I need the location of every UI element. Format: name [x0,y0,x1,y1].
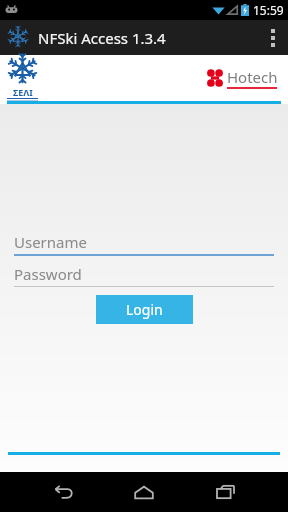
staticText: NFSki Access 1.3.4 [38,28,166,48]
staticText: 15:59 [253,2,284,18]
staticText: Hotech [227,67,278,87]
button[interactable]: Home [127,475,161,509]
button[interactable]: Recent apps [208,475,242,509]
staticText: ΣΕΛΙ [13,86,33,98]
button[interactable]: Login [96,295,193,324]
button[interactable]: Username [14,231,274,256]
staticText: Username [14,232,87,252]
button[interactable]: Back [46,475,80,509]
button[interactable]: More options [258,20,288,55]
button[interactable]: Password [14,263,274,287]
staticText: Password [14,264,82,284]
staticText: Login [126,300,163,319]
